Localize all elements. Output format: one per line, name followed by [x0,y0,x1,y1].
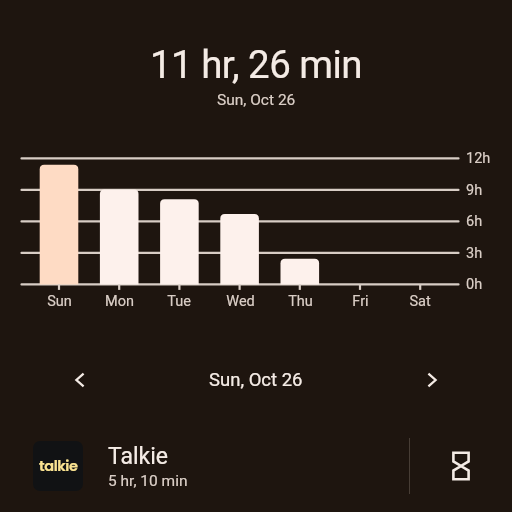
button[interactable]: Sun, Oct 26 [160,356,352,404]
staticText: Sat [409,293,431,310]
staticText: 9h [466,182,483,199]
staticText: 11 hr, 26 min [150,42,362,87]
staticText: 6h [466,213,483,230]
staticText: Thu [288,293,313,310]
staticText: Talkie [108,443,169,470]
button[interactable]: Set app timer [410,428,512,504]
button[interactable]: Previous day [0,356,160,404]
staticText: 12h [466,150,491,167]
staticText: Wed [226,293,255,310]
staticText: 3h [466,245,483,262]
staticText: Sun [47,293,72,310]
staticText: 5 hr, 10 min [108,472,188,490]
staticText: Sun, Oct 26 [217,91,296,109]
button[interactable]: Next day [352,356,512,404]
staticText: talkie [39,456,78,476]
staticText: Fri [352,293,369,310]
staticText: 0h [466,276,483,293]
staticText: Tue [167,293,191,310]
staticText: Mon [105,293,134,310]
staticText: Sun, Oct 26 [209,369,303,391]
button[interactable]: talkie [0,428,409,504]
